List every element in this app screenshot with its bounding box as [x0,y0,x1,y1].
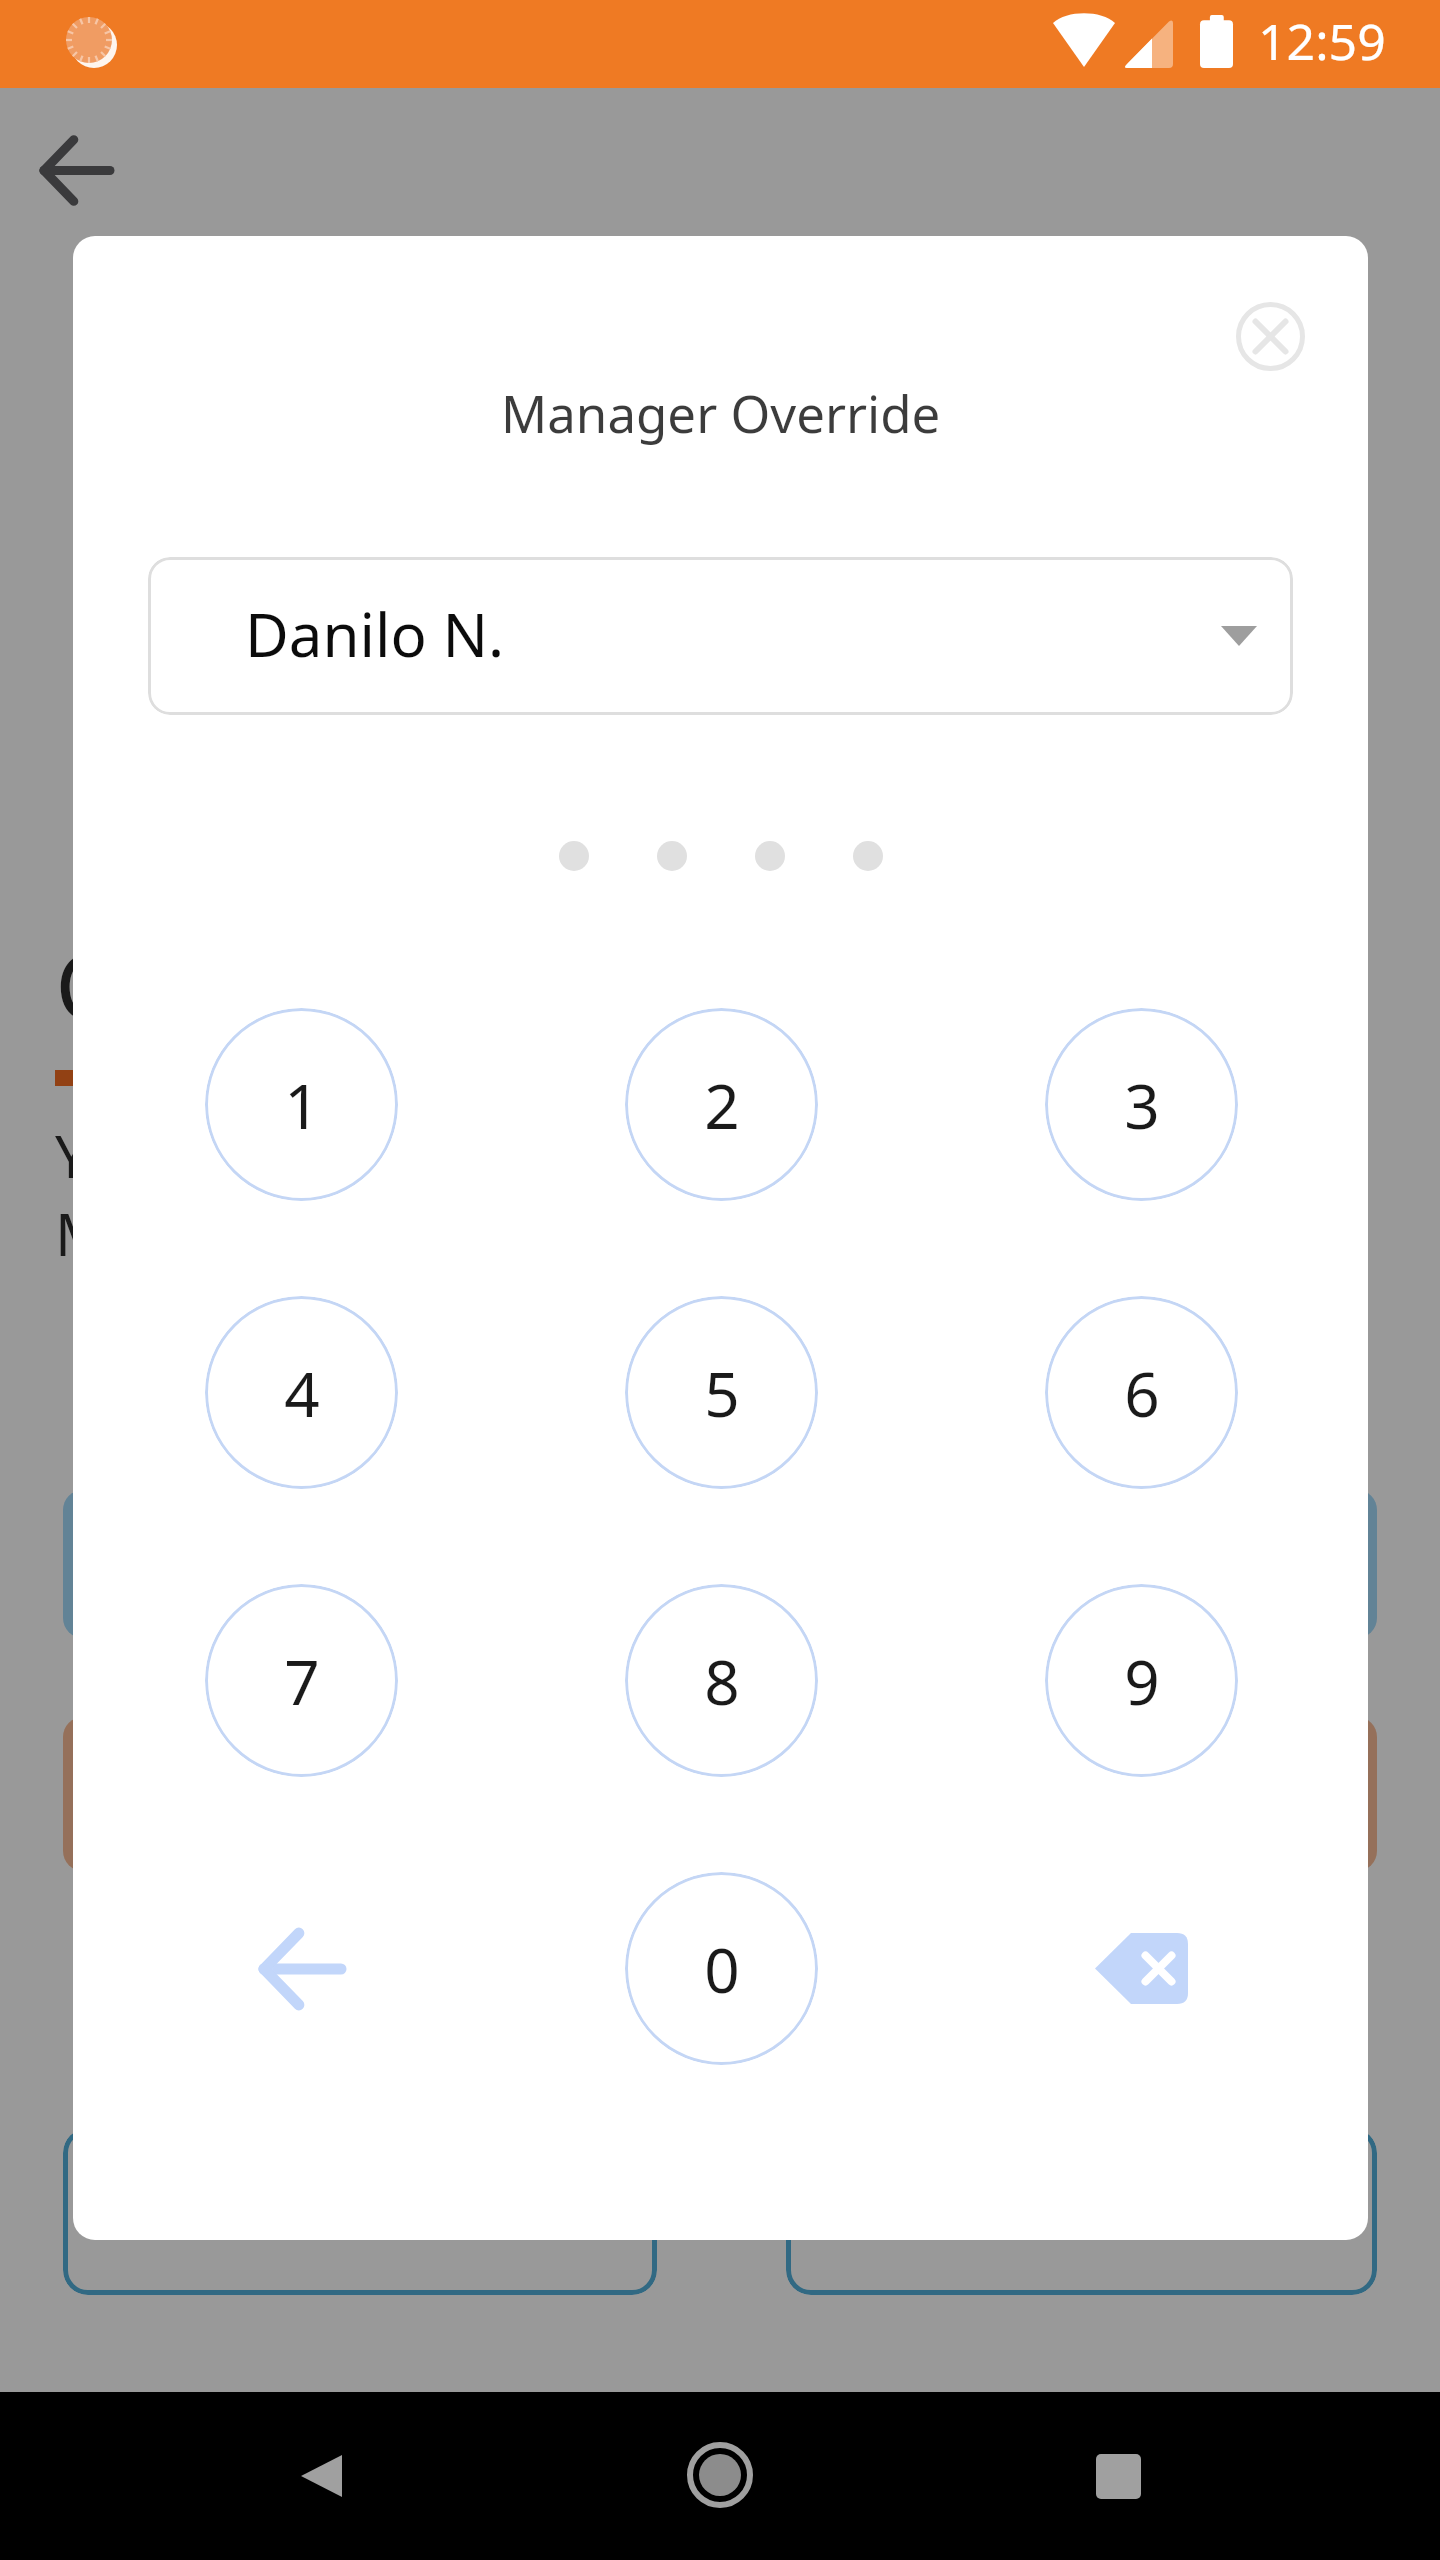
button[interactable]: Danilo N. [148,557,1293,715]
button[interactable]: Recents [1058,2416,1178,2536]
staticText: Manager Override [501,378,941,447]
button[interactable]: Back [205,1872,398,2065]
button[interactable]: 3 [1045,1008,1238,1201]
button[interactable]: 2 [625,1008,818,1201]
button[interactable]: Backspace [1045,1872,1238,2065]
staticText: Your order is ready. Manager approval re… [55,1116,802,1273]
button[interactable] [63,2128,657,2295]
button[interactable]: Close [1197,263,1343,409]
staticText: 3 [1124,1063,1160,1147]
staticText: 8 [704,1639,740,1723]
button[interactable]: 6 [1045,1296,1238,1489]
button[interactable]: Home [660,2415,780,2535]
button[interactable]: Back [261,2416,381,2536]
button[interactable]: 9 [1045,1584,1238,1777]
staticText: 0 [704,1927,740,2011]
button[interactable] [63,1490,1377,1638]
staticText: 2 [704,1063,740,1147]
staticText: 6 [1124,1351,1160,1435]
staticText: 7 [284,1639,320,1723]
button[interactable]: 7 [205,1584,398,1777]
button[interactable]: 5 [625,1296,818,1489]
button[interactable] [786,2128,1377,2295]
staticText: 9 [1124,1639,1160,1723]
button[interactable]: Back [28,122,124,218]
button[interactable]: 4 [205,1296,398,1489]
staticText: 5 [704,1351,740,1435]
button[interactable]: 8 [625,1584,818,1777]
staticText: 1 [284,1063,320,1147]
button[interactable]: 0 [625,1872,818,2065]
button[interactable] [63,1717,1377,1871]
staticText: Danilo N. [245,593,505,675]
button[interactable]: 1 [205,1008,398,1201]
staticText: 4 [284,1351,320,1435]
staticText: Confirm [55,920,413,1048]
staticText: 12:59 [1258,7,1386,75]
